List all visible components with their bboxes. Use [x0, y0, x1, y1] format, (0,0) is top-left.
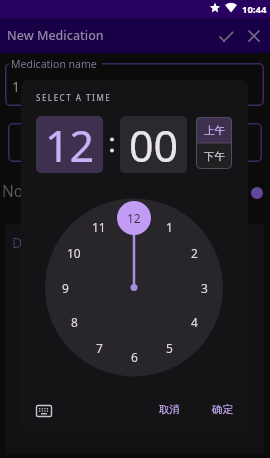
staticText: 10:44	[242, 3, 267, 16]
button[interactable]	[251, 187, 263, 199]
staticText: 1	[166, 219, 173, 235]
staticText: New Medication	[7, 27, 104, 44]
button[interactable]	[32, 400, 56, 422]
staticText: 6	[131, 349, 138, 365]
button[interactable]: 上午	[196, 117, 232, 143]
button[interactable]	[242, 24, 266, 48]
staticText: D	[12, 233, 23, 252]
staticText: 2	[191, 245, 198, 261]
button[interactable]: 下午	[196, 143, 232, 169]
staticText: 12	[127, 210, 141, 226]
staticText: 1	[12, 77, 21, 96]
staticText: 10	[67, 245, 81, 261]
staticText: 5	[166, 340, 173, 356]
staticText: 3	[201, 280, 208, 296]
staticText: Medication name	[11, 57, 97, 71]
staticText: 确定	[212, 403, 233, 416]
staticText: 8	[71, 314, 78, 330]
staticText: Notification	[2, 180, 87, 201]
staticText: 7	[96, 340, 103, 356]
staticText: 00	[129, 116, 179, 173]
staticText: 12	[45, 116, 95, 173]
button[interactable]: 00	[120, 116, 187, 173]
staticText: 取消	[159, 403, 180, 416]
staticText: 上午	[204, 124, 225, 137]
button[interactable]: 确定	[206, 400, 238, 418]
staticText: 11	[92, 219, 106, 235]
staticText: SELECT A TIME	[36, 92, 112, 103]
staticText: 4	[191, 314, 198, 330]
staticText: 9	[62, 280, 69, 296]
button[interactable]: 12	[36, 116, 103, 173]
button[interactable]	[214, 24, 238, 48]
staticText: 下午	[204, 150, 225, 163]
button[interactable]: 取消	[153, 400, 185, 418]
